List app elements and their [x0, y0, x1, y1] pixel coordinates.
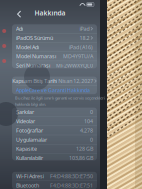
staticText: iPadOS Sürümü — [16, 34, 53, 41]
staticText: AppleCare ve Garanti Hakkında — [16, 87, 90, 94]
button[interactable]: Kapsam Bitiş Tarihi — [12, 77, 97, 85]
staticText: F4:D4:88:3D:E7:50 — [50, 173, 93, 180]
staticText: Kullanılabilir — [16, 154, 43, 162]
staticText: Kapasite — [16, 145, 37, 152]
staticText: 104 — [84, 118, 93, 125]
staticText: 103,86 GB — [69, 154, 93, 162]
staticText: F4:D4:88:3D:E7:51 — [50, 182, 93, 189]
button[interactable]: Back — [14, 8, 24, 20]
staticText: Model Adı — [16, 44, 39, 51]
staticText: Bluetooth — [16, 182, 39, 189]
staticText: Wi-Fi Adresi — [16, 173, 44, 180]
staticText: MD4Y9TU/A — [63, 53, 93, 60]
staticText: 0 — [90, 136, 93, 143]
staticText: 0 — [90, 108, 93, 116]
staticText: Adı — [16, 25, 23, 32]
staticText: Fotoğraflar — [16, 127, 43, 134]
staticText: 18.2 — [80, 34, 90, 41]
staticText: hakkında bilgi alın. — [15, 101, 46, 107]
staticText: Şarkılar — [16, 108, 34, 116]
staticText: Model Numarası — [16, 53, 56, 60]
staticText: iPad — [80, 25, 90, 32]
staticText: 4.278 — [80, 127, 93, 134]
button[interactable]: AppleCare ve Garanti Hakkında — [12, 86, 97, 95]
button[interactable]: Adı — [12, 24, 97, 33]
staticText: Seri Numarası — [16, 62, 50, 69]
staticText: Nisan 12, 2027 — [58, 77, 93, 85]
staticText: 128 GB — [76, 145, 93, 152]
staticText: iPad (A16) — [69, 44, 93, 51]
button[interactable]: iPadOS Sürümü — [12, 33, 97, 42]
staticText: Hakkında — [34, 9, 65, 17]
staticText: Kapsam Bitiş Tarihi — [12, 77, 57, 85]
staticText: Videolar — [16, 118, 35, 125]
staticText: MF2WWXYQL0 — [56, 62, 93, 69]
staticText: Bu cihaz ile ilgili sınırlı garanti ve s… — [15, 95, 105, 101]
staticText: Uygulamalar — [16, 136, 47, 143]
